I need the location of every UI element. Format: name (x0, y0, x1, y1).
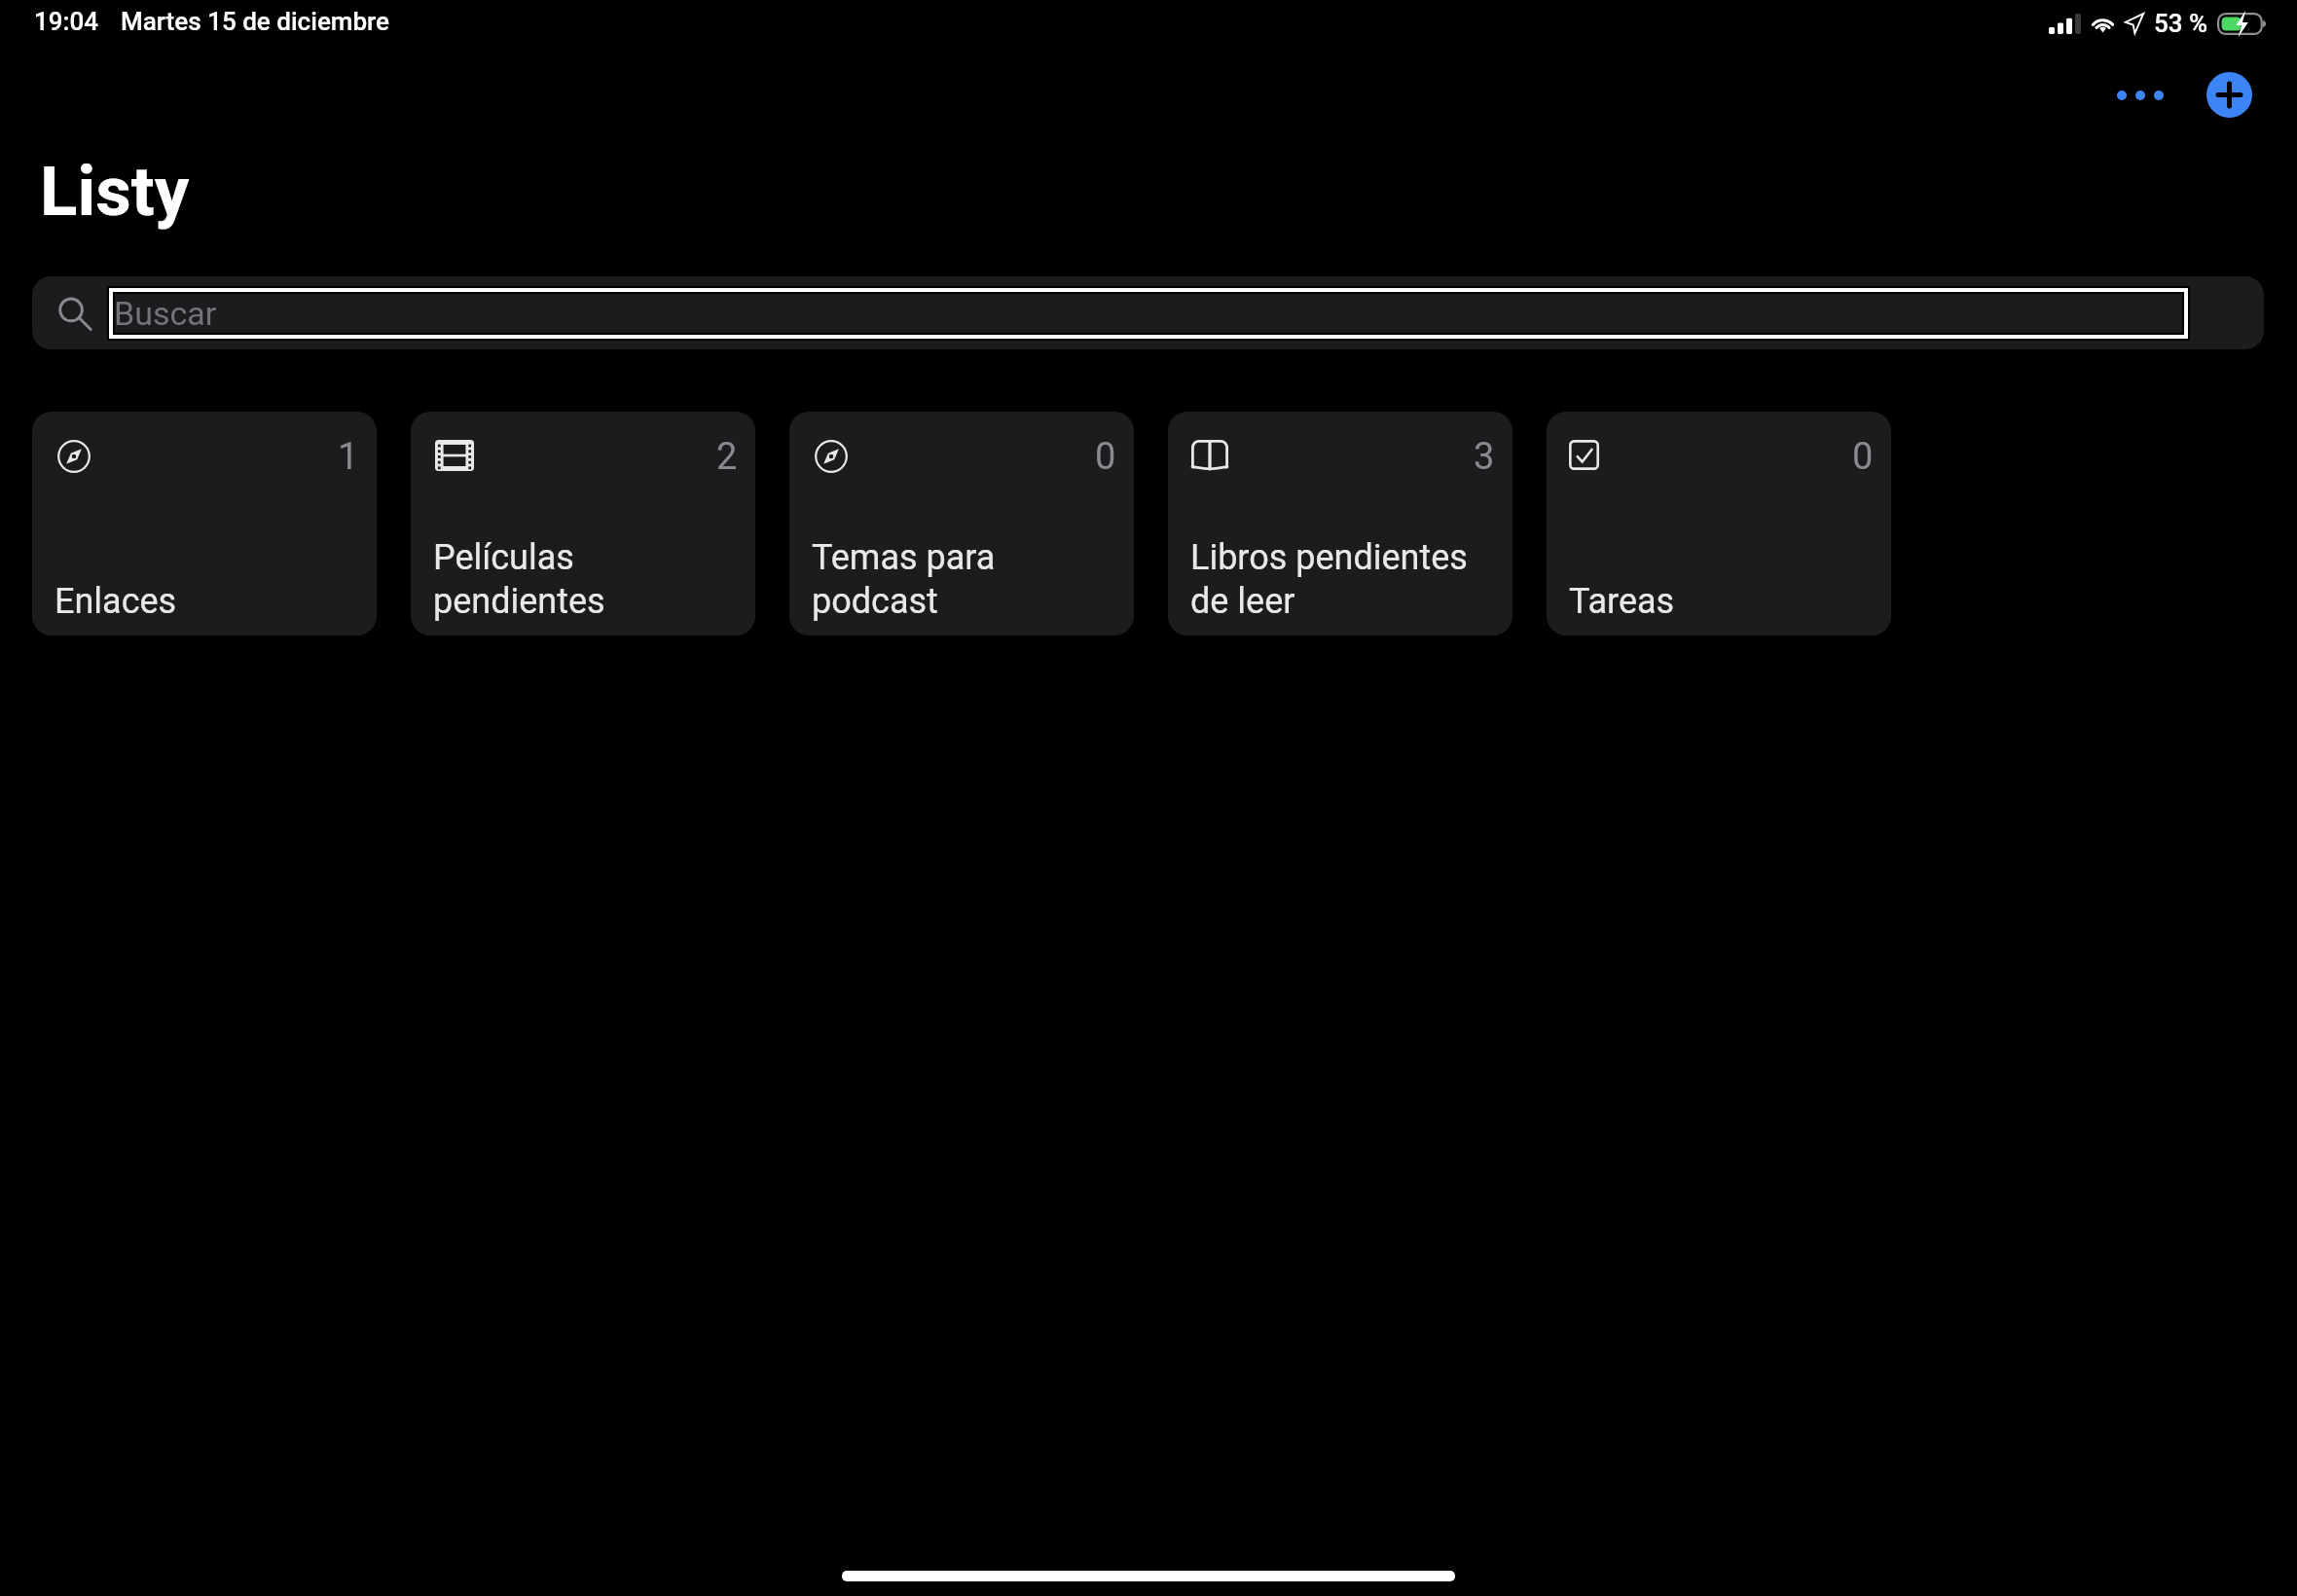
staticText: 0 (1095, 435, 1116, 479)
staticText: Películas pendientes (433, 537, 605, 622)
staticText: 2 (716, 435, 738, 479)
staticText: 53 % (2154, 9, 2208, 38)
staticText: Martes 15 de diciembre (121, 7, 389, 36)
button[interactable]: Buscar (32, 276, 2264, 349)
staticText: Listy (40, 151, 190, 232)
staticText: Temas para podcast (812, 537, 996, 622)
staticText: 19:04 (34, 7, 99, 36)
staticText: Libros pendientes de leer (1190, 537, 1468, 622)
button[interactable]: 0 (789, 412, 1134, 635)
staticText: Tareas (1569, 581, 1675, 622)
staticText: Buscar (114, 294, 217, 333)
button[interactable]: More options (2105, 72, 2175, 118)
staticText: Enlaces (55, 581, 177, 622)
staticText: 1 (338, 435, 359, 479)
button[interactable]: 1 (32, 412, 377, 635)
staticText: 0 (1852, 435, 1874, 479)
button[interactable]: 3 (1168, 412, 1513, 635)
button[interactable]: 0 (1547, 412, 1891, 635)
staticText: 3 (1474, 435, 1495, 479)
button[interactable]: Add list (2206, 72, 2252, 118)
button[interactable]: 2 (411, 412, 755, 635)
